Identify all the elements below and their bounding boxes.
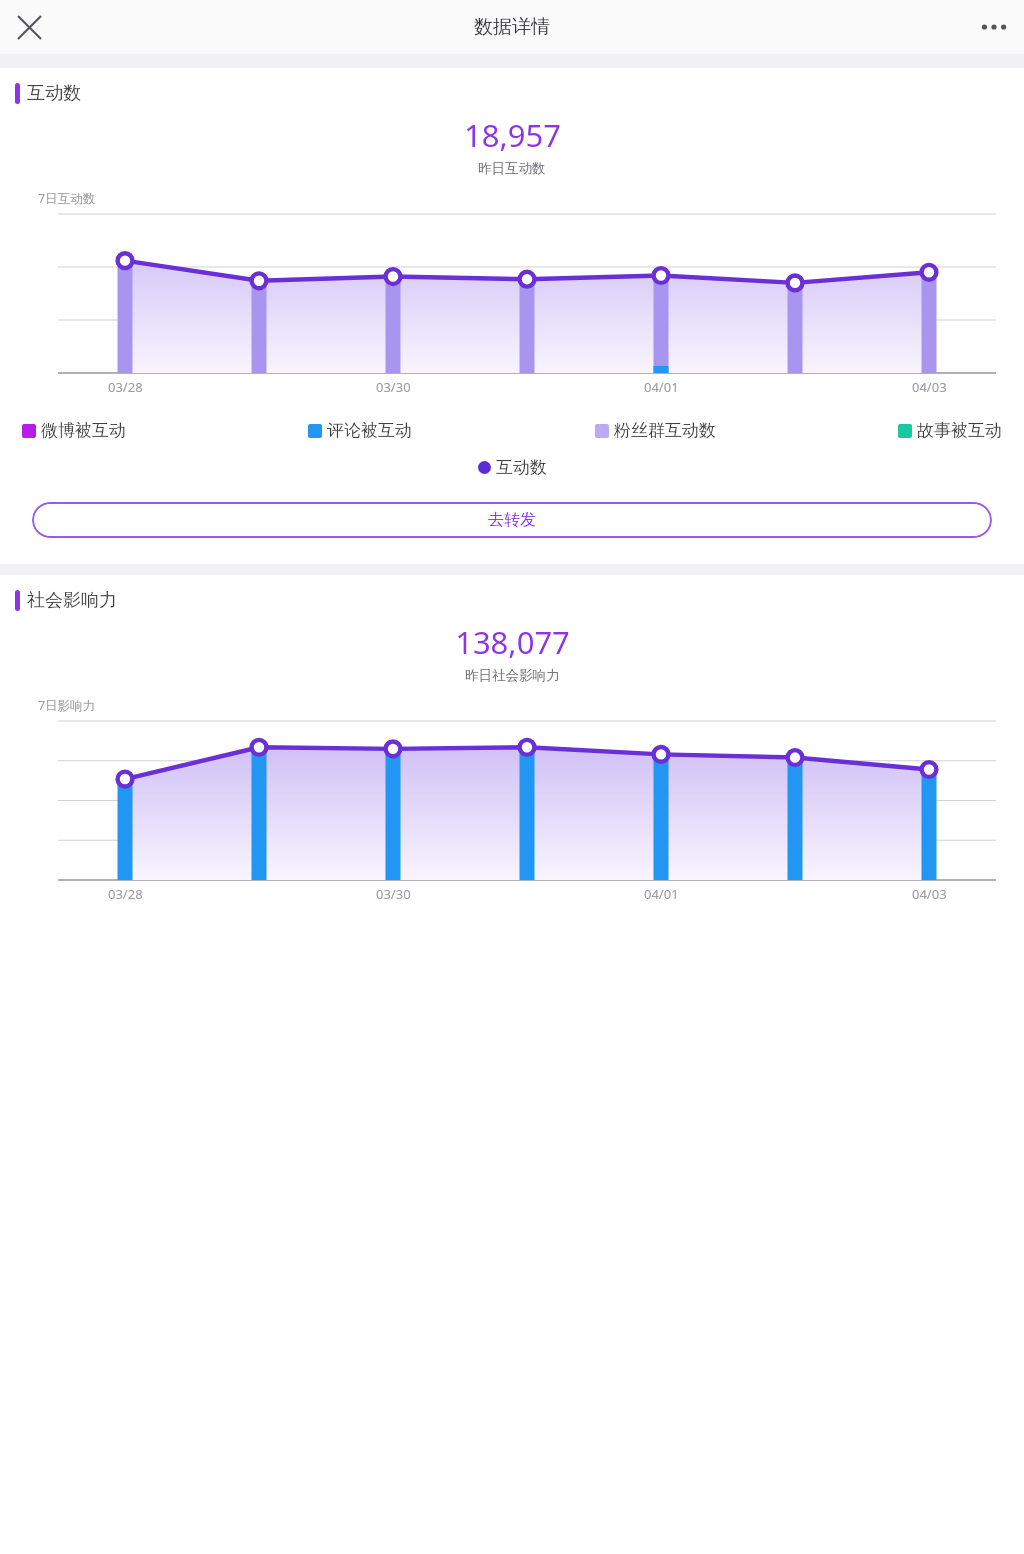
button[interactable]: 互动数 (478, 457, 547, 478)
staticText: 互动数 (496, 457, 547, 478)
staticText: 03/30 (376, 885, 411, 903)
staticText: 04/03 (912, 378, 947, 396)
staticText: 03/28 (108, 885, 143, 903)
staticText: 7日影响力 (38, 697, 96, 714)
staticText: 互动数 (27, 82, 81, 105)
button[interactable]: 去转发 (32, 502, 992, 538)
staticText: 微博被互动 (41, 420, 126, 441)
button[interactable]: Close (6, 4, 52, 50)
staticText: 18,957 (464, 114, 561, 156)
staticText: 7日互动数 (38, 190, 96, 207)
staticText: 故事被互动 (917, 420, 1002, 441)
button[interactable]: 粉丝群互动数 (595, 420, 716, 441)
staticText: 去转发 (488, 510, 536, 530)
button[interactable]: 评论被互动 (308, 420, 412, 441)
staticText: 03/28 (108, 378, 143, 396)
staticText: 04/01 (644, 378, 679, 396)
staticText: 数据详情 (474, 15, 550, 39)
staticText: 昨日社会影响力 (465, 667, 560, 684)
staticText: 04/01 (644, 885, 679, 903)
staticText: 社会影响力 (27, 589, 117, 612)
staticText: 138,077 (455, 621, 570, 663)
staticText: 昨日互动数 (478, 160, 546, 177)
staticText: 评论被互动 (327, 420, 412, 441)
staticText: 03/30 (376, 378, 411, 396)
button[interactable]: More options (970, 3, 1018, 51)
staticText: 粉丝群互动数 (614, 420, 716, 441)
button[interactable]: 故事被互动 (898, 420, 1002, 441)
button[interactable]: 微博被互动 (22, 420, 126, 441)
staticText: 04/03 (912, 885, 947, 903)
